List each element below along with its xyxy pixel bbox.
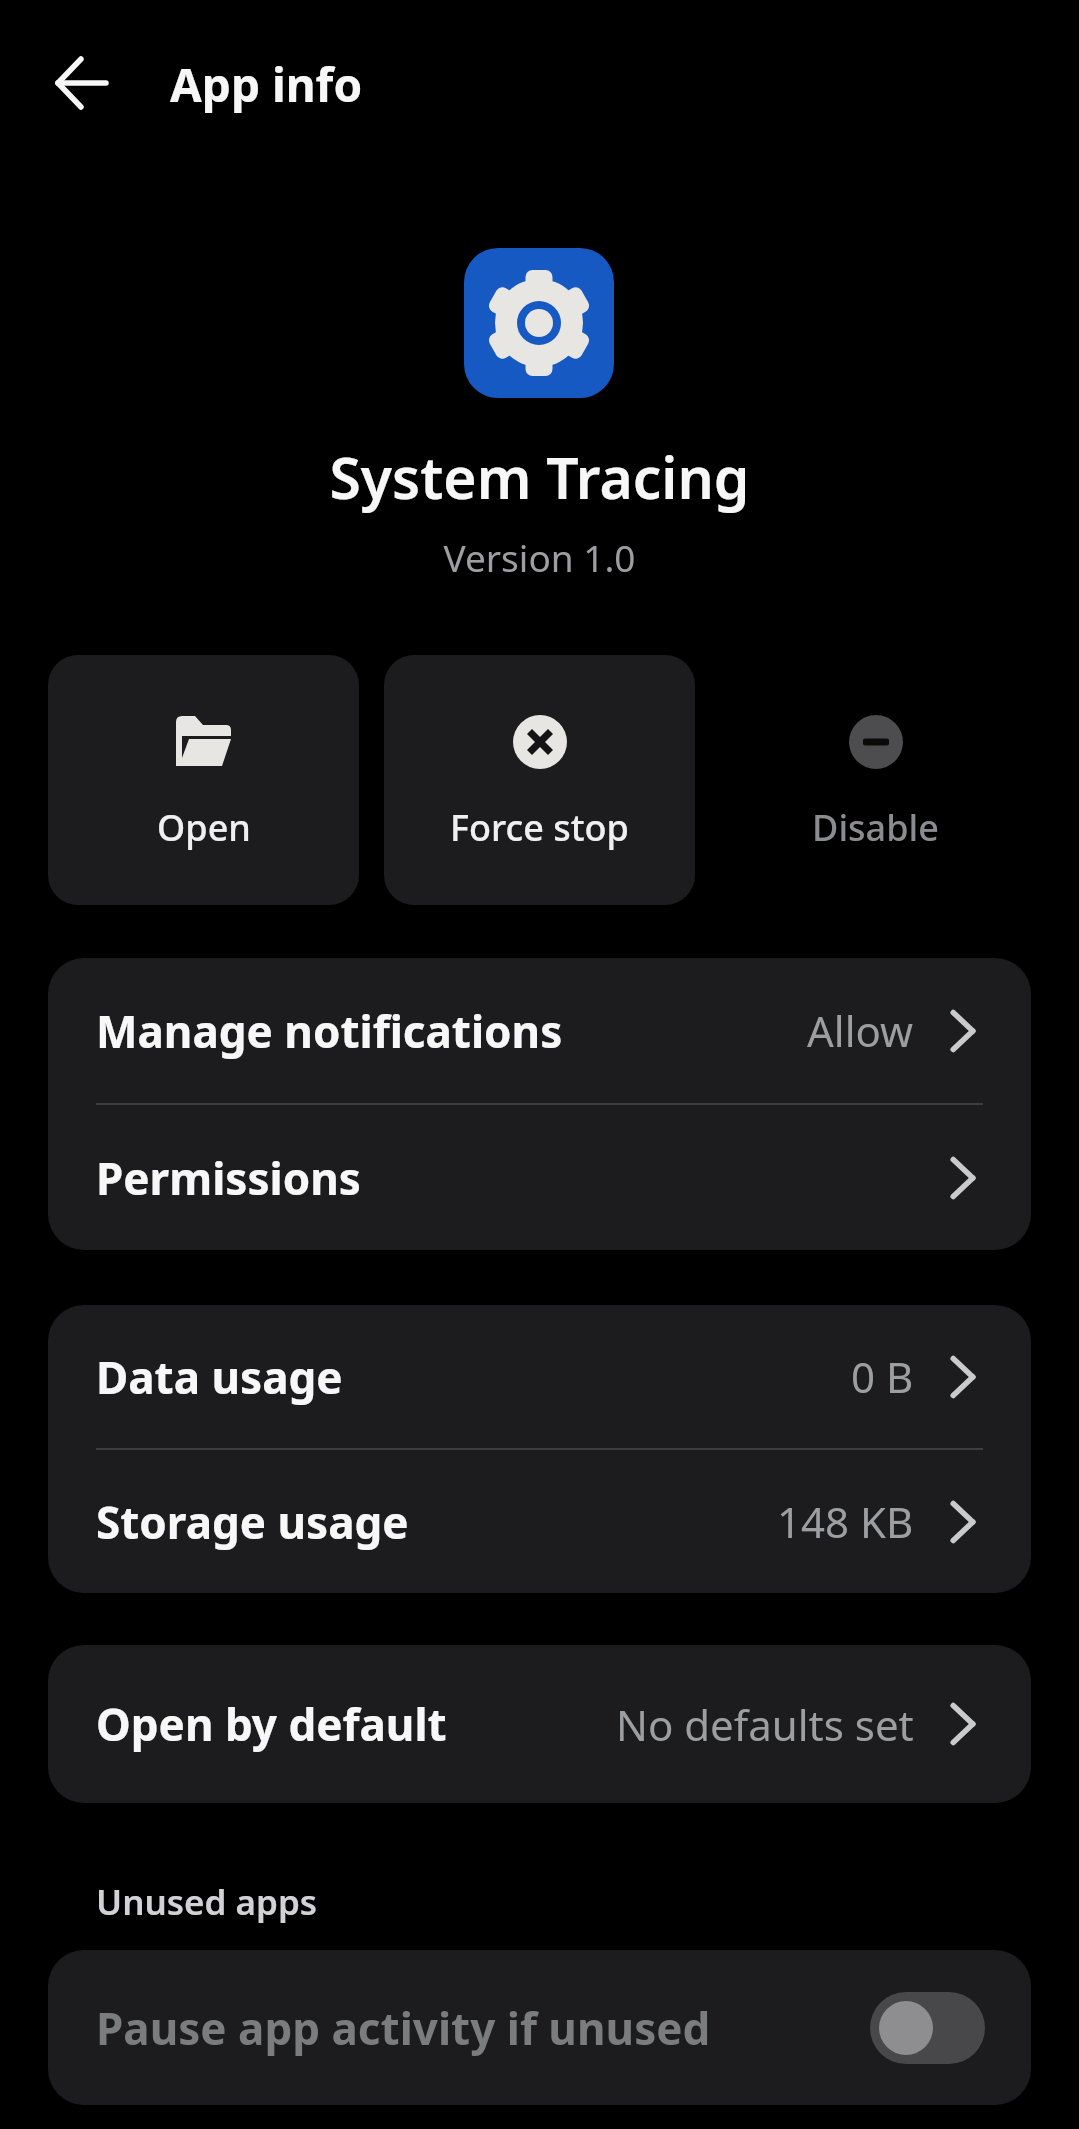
staticText: Disable [812, 803, 939, 852]
staticText: No defaults set [616, 1696, 914, 1753]
button[interactable]: Storage usage [96, 1450, 977, 1593]
staticText: Storage usage [96, 1492, 409, 1552]
staticText: 148 KB [777, 1493, 914, 1550]
staticText: Permissions [96, 1148, 361, 1208]
staticText: App info [170, 53, 363, 116]
button[interactable]: Pause app activity if unused [48, 1950, 1031, 2105]
button[interactable]: Open by default [96, 1645, 977, 1803]
staticText: Force stop [450, 803, 629, 852]
staticText: Unused apps [96, 1878, 318, 1926]
button[interactable]: Manage notifications [96, 958, 977, 1103]
staticText: Manage notifications [96, 1001, 563, 1061]
staticText: Open by default [96, 1694, 447, 1754]
staticText: Data usage [96, 1347, 343, 1407]
staticText: Allow [807, 1002, 914, 1059]
staticText: Version 1.0 [0, 532, 1079, 582]
staticText: System Tracing [0, 438, 1079, 516]
button[interactable]: Force stop [384, 655, 695, 905]
staticText: 0 B [851, 1348, 914, 1405]
button[interactable]: Data usage [96, 1305, 977, 1448]
button[interactable]: Disable [720, 655, 1031, 905]
button[interactable]: Permissions [96, 1105, 977, 1250]
staticText: Pause app activity if unused [96, 1998, 711, 2058]
button[interactable] [48, 57, 110, 109]
button[interactable]: Open [48, 655, 359, 905]
staticText: Open [157, 803, 251, 852]
